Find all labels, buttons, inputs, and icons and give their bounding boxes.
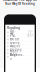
button[interactable]: Text Size <box>5 38 35 41</box>
staticText: Reading <box>7 26 20 30</box>
button[interactable]: Spacing <box>5 41 35 45</box>
staticText: Scrolling <box>10 48 22 51</box>
staticText: Margins <box>10 44 20 48</box>
button[interactable]: Margins <box>5 45 35 48</box>
button[interactable]: Theme <box>5 31 35 34</box>
button[interactable]: Night Mode <box>5 52 35 55</box>
staticText: Your Way Of Reading <box>5 2 35 5</box>
button[interactable]: Brightness <box>5 55 35 59</box>
staticText: Text Size <box>10 37 20 41</box>
staticText: Serif <box>27 34 33 37</box>
staticText: Theme <box>10 29 16 36</box>
staticText: Typeface <box>10 30 16 41</box>
staticText: Spacing <box>10 41 20 44</box>
staticText: Night Mode <box>10 50 18 57</box>
staticText: Customize The App For <box>3 0 37 2</box>
button[interactable]: Scrolling <box>5 48 35 52</box>
button[interactable]: Typeface <box>5 34 35 38</box>
staticText: Light <box>28 29 33 36</box>
staticText: Brightness <box>10 53 24 60</box>
